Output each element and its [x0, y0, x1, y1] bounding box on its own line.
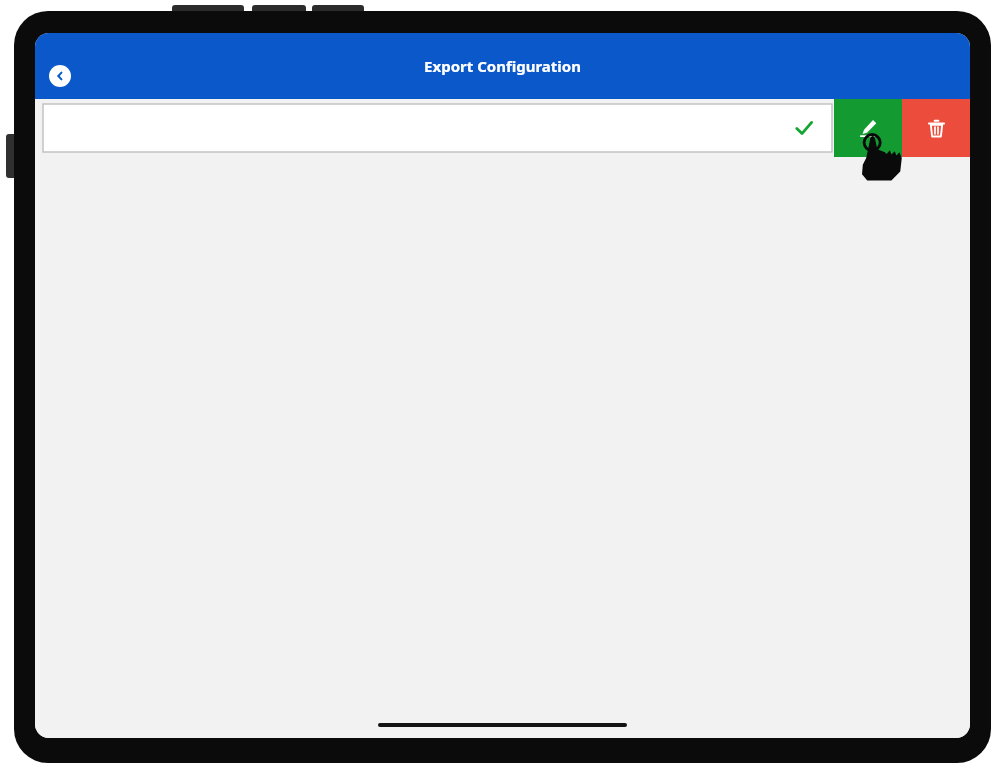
- staticText: Export Configuration: [424, 56, 581, 76]
- button[interactable]: [43, 104, 832, 152]
- button[interactable]: Delete: [902, 99, 970, 157]
- button[interactable]: Back: [49, 65, 71, 87]
- button[interactable]: Edit: [834, 99, 902, 157]
